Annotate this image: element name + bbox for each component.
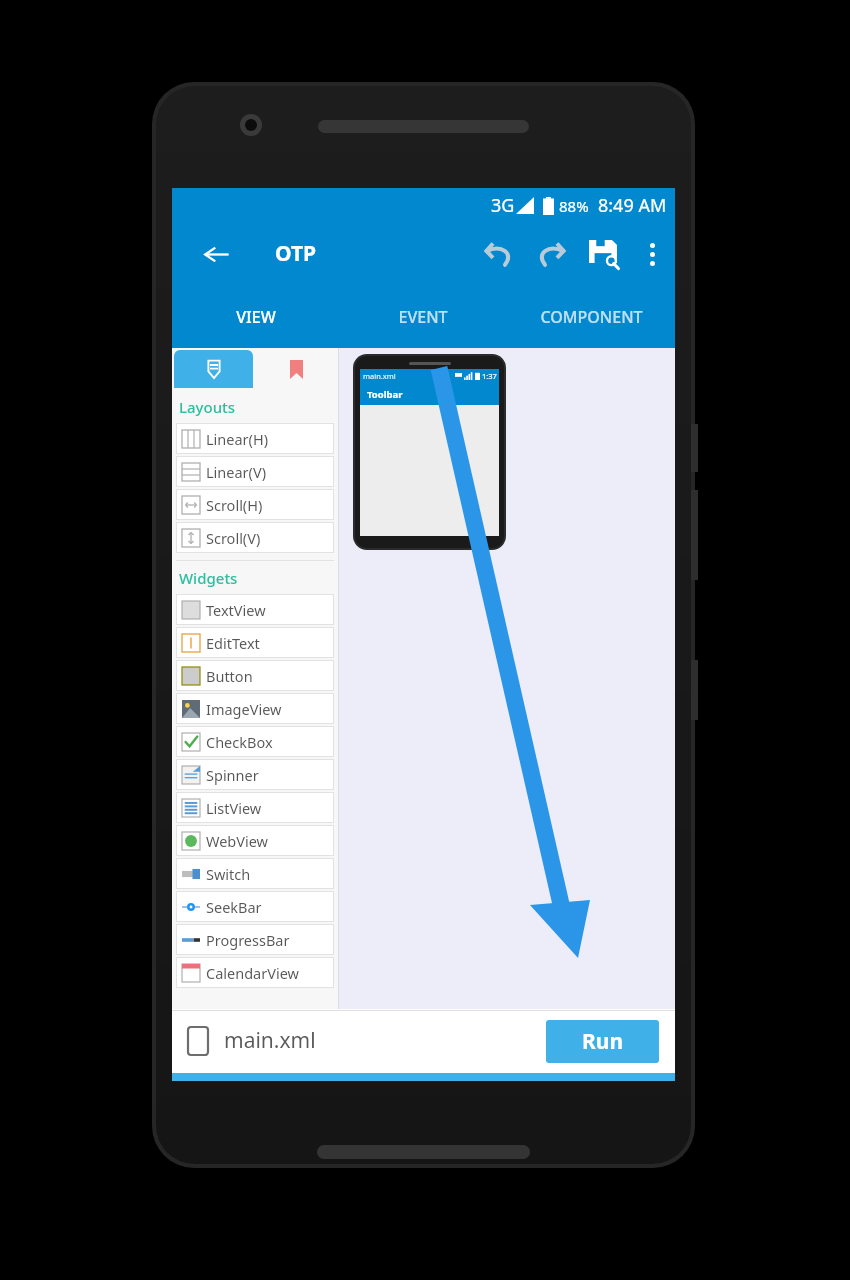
button[interactable]: Scroll(H) <box>176 489 334 520</box>
staticText: CheckBox <box>206 732 273 752</box>
staticText: Button <box>206 666 253 686</box>
button[interactable]: Button <box>176 660 334 691</box>
button[interactable]: CalendarView <box>176 957 334 988</box>
button[interactable]: Back <box>188 226 244 282</box>
button[interactable]: Saved palette <box>255 348 338 390</box>
button[interactable]: WebView <box>176 825 334 856</box>
staticText: SeekBar <box>206 897 262 917</box>
button[interactable]: Run <box>546 1020 659 1063</box>
button[interactable]: EditText <box>176 627 334 658</box>
button[interactable]: VIEW <box>172 285 339 348</box>
staticText: Linear(H) <box>206 429 269 449</box>
button[interactable]: Undo <box>473 228 525 280</box>
staticText: 8:49 AM <box>598 193 667 218</box>
staticText: VIEW <box>236 306 276 328</box>
staticText: CalendarView <box>206 963 299 983</box>
button[interactable]: ProgressBar <box>176 924 334 955</box>
staticText: Switch <box>206 864 251 884</box>
staticText: ListView <box>206 798 262 818</box>
staticText: ProgressBar <box>206 930 290 950</box>
button[interactable]: Scroll(V) <box>176 522 334 553</box>
button[interactable]: ImageView <box>176 693 334 724</box>
staticText: EVENT <box>398 306 448 328</box>
staticText: Widgets <box>179 568 238 588</box>
button[interactable]: COMPONENT <box>507 285 675 348</box>
staticText: Run <box>582 1027 624 1056</box>
button[interactable]: Linear(H) <box>176 423 334 454</box>
staticText: Scroll(H) <box>206 495 263 515</box>
button[interactable]: CheckBox <box>176 726 334 757</box>
button[interactable]: main.xml <box>188 1011 675 1070</box>
staticText: Linear(V) <box>206 462 267 482</box>
staticText: main.xml <box>224 1026 316 1055</box>
staticText: Scroll(V) <box>206 528 261 548</box>
staticText: EditText <box>206 633 260 653</box>
button[interactable]: TextView <box>176 594 334 625</box>
staticText: Spinner <box>206 765 259 785</box>
button[interactable]: Redo <box>525 228 577 280</box>
staticText: Toolbar <box>367 388 403 401</box>
staticText: TextView <box>206 600 266 620</box>
staticText: Layouts <box>179 397 236 417</box>
button[interactable]: Switch <box>176 858 334 889</box>
staticText: WebView <box>206 831 269 851</box>
button[interactable]: EVENT <box>339 285 507 348</box>
button[interactable]: Linear(V) <box>176 456 334 487</box>
button[interactable]: Spinner <box>176 759 334 790</box>
staticText: 3G <box>491 193 515 218</box>
staticText: 88% <box>559 196 589 216</box>
staticText: OTP <box>275 239 317 268</box>
staticText: COMPONENT <box>540 306 643 328</box>
staticText: main.xml <box>363 371 396 381</box>
button[interactable]: More options <box>629 231 675 277</box>
staticText: 1:37 <box>482 371 497 381</box>
button[interactable]: Widgets palette <box>174 350 253 388</box>
button[interactable]: SeekBar <box>176 891 334 922</box>
staticText: ImageView <box>206 699 282 719</box>
button[interactable]: Save <box>577 228 629 280</box>
button[interactable]: ListView <box>176 792 334 823</box>
